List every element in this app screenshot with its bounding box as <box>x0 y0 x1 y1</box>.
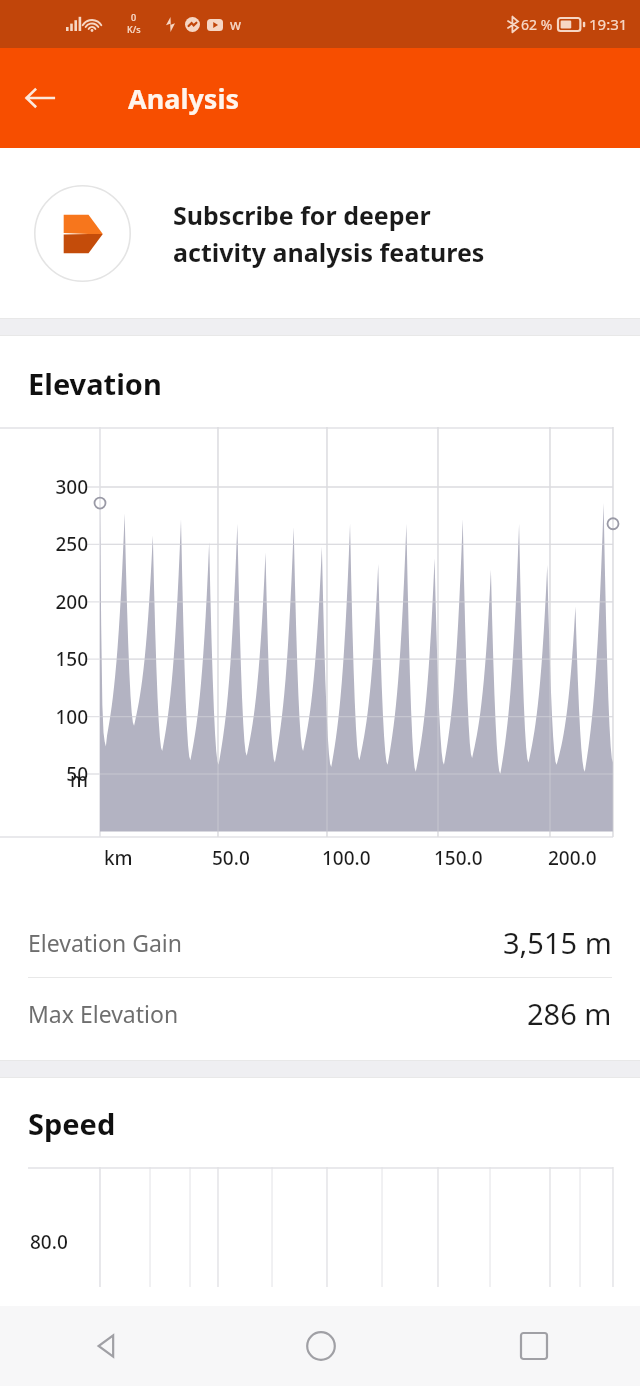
staticText: 150 <box>55 646 88 672</box>
staticText: m <box>70 767 88 793</box>
staticText: 50 <box>66 761 88 787</box>
button[interactable]: Back <box>0 1306 214 1386</box>
button[interactable]: Back <box>12 70 68 126</box>
staticText: 150.0 <box>434 845 483 871</box>
staticText: Elevation Gain <box>28 927 182 958</box>
staticText: 200.0 <box>548 845 597 871</box>
staticText: w <box>230 15 242 34</box>
button[interactable]: Elevation Gain <box>0 907 640 977</box>
staticText: Speed <box>28 1104 116 1143</box>
staticText: 200 <box>55 589 88 615</box>
staticText: km <box>104 845 133 871</box>
button[interactable]: Home <box>214 1306 427 1386</box>
staticText: 286 m <box>527 994 612 1033</box>
staticText: 250 <box>55 531 88 557</box>
staticText: 80.0 <box>30 1229 68 1255</box>
staticText: 100 <box>55 704 88 730</box>
staticText: 0 <box>131 11 137 23</box>
staticText: 62 % <box>521 15 553 34</box>
staticText: K/s <box>127 23 141 35</box>
staticText: Subscribe for deeper <box>173 198 431 232</box>
staticText: 300 <box>55 474 88 500</box>
staticText: activity analysis features <box>173 235 485 269</box>
staticText: 19:31 <box>589 14 628 34</box>
staticText: Analysis <box>128 80 240 117</box>
button[interactable]: Max Elevation <box>0 978 640 1048</box>
staticText: 100.0 <box>322 845 371 871</box>
button[interactable]: Recent apps <box>427 1306 640 1386</box>
staticText: Max Elevation <box>28 998 179 1029</box>
staticText: 50.0 <box>212 845 250 871</box>
staticText: 3,515 m <box>503 923 612 962</box>
staticText: Elevation <box>28 364 162 403</box>
button[interactable]: Subscribe for deeper <box>0 148 640 318</box>
